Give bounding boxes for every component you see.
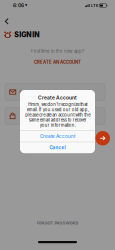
staticText: CREATE AN ACCOUNT — [34, 60, 81, 65]
button[interactable]: Cancel — [20, 142, 95, 153]
staticText: PASSWORD — [20, 114, 44, 119]
button[interactable]: Continue — [95, 131, 110, 145]
staticText: Create Account — [38, 95, 77, 101]
staticText: FORGOT PASSWORD — [36, 220, 78, 225]
staticText: EMAIL — [20, 90, 32, 95]
button[interactable]: Back — [0, 14, 15, 29]
staticText: 6:06 — [13, 3, 24, 8]
staticText: LTE — [91, 3, 98, 8]
staticText: SIGN IN — [14, 31, 39, 39]
staticText: Create Account — [40, 133, 75, 139]
button[interactable]: CREATE AN ACCOUNT — [0, 58, 115, 67]
button[interactable]: FORGOT PASSWORD — [0, 218, 115, 228]
staticText: Hmm, we don't recognize that email. If y… — [25, 102, 90, 128]
staticText: First time in the new app? — [31, 48, 84, 54]
button[interactable]: Create Account — [20, 131, 95, 142]
staticText: Cancel — [49, 145, 65, 150]
